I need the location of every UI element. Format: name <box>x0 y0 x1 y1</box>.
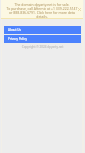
staticText: Privacy Policy <box>8 37 27 41</box>
button[interactable]: Privacy Policy <box>4 35 81 43</box>
button[interactable]: Close <box>77 7 82 12</box>
staticText: Copyright © 2024 dpyarty.net <box>0 45 85 49</box>
staticText: The domain dpyarty.net is for sale. To p… <box>5 2 79 19</box>
button[interactable]: About Us <box>4 26 81 34</box>
staticText: About Us <box>8 28 21 32</box>
